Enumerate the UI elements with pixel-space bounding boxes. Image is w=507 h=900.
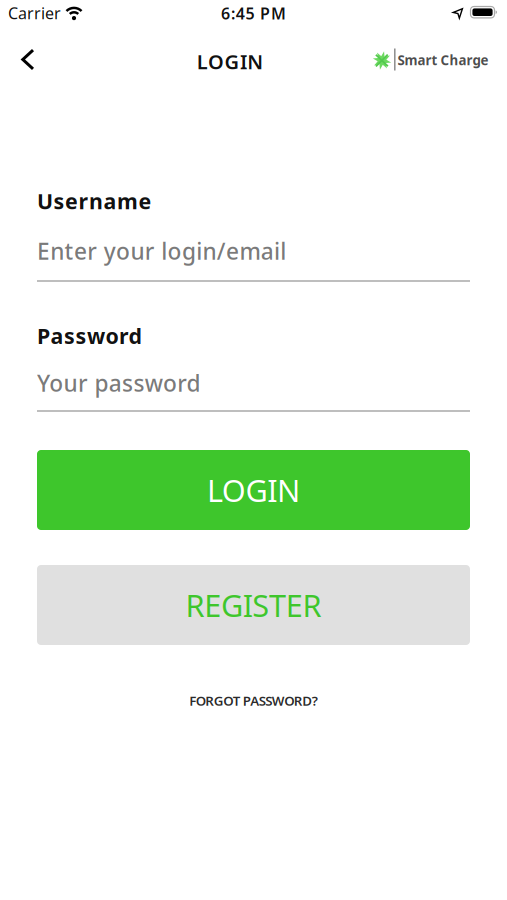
- staticText: Smart Charge: [397, 51, 488, 69]
- staticText: LOGIN: [207, 470, 300, 510]
- staticText: 6:45 PM: [221, 3, 286, 24]
- staticText: LOGIN: [197, 48, 263, 75]
- button[interactable]: Enter your login/email: [37, 226, 470, 282]
- staticText: Password: [37, 321, 141, 350]
- staticText: FORGOT PASSWORD?: [189, 692, 318, 709]
- staticText: Your password: [37, 368, 201, 398]
- staticText: Enter your login/email: [37, 236, 286, 266]
- button[interactable]: FORGOT PASSWORD?: [133, 683, 373, 717]
- button[interactable]: REGISTER: [37, 565, 470, 645]
- button[interactable]: Your password: [37, 356, 470, 412]
- staticText: Username: [37, 187, 151, 215]
- staticText: Carrier: [8, 2, 61, 24]
- staticText: REGISTER: [185, 585, 321, 625]
- button[interactable]: Back: [8, 37, 48, 81]
- button[interactable]: LOGIN: [37, 450, 470, 530]
